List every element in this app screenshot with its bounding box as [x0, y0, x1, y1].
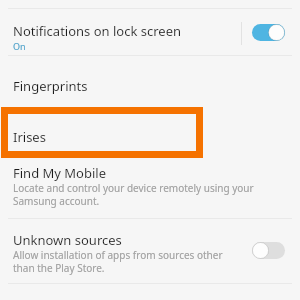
staticText: Unknown sources [13, 231, 122, 249]
staticText: than the Play Store. [13, 261, 105, 275]
staticText: Irises [13, 128, 46, 146]
button[interactable]: Unknown sources toggle [252, 242, 285, 259]
button[interactable]: Irises [0, 107, 300, 158]
staticText: Fingerprints [13, 77, 88, 95]
button[interactable]: Find My Mobile [0, 158, 300, 218]
staticText: Allow installation of apps from sources … [13, 248, 223, 262]
button[interactable]: Fingerprints [0, 56, 300, 107]
button[interactable]: Notifications on lock screen toggle [252, 24, 285, 41]
button[interactable]: Unknown sources [0, 219, 300, 283]
staticText: Find My Mobile [13, 164, 107, 182]
staticText: On [13, 40, 26, 52]
staticText: Locate and control your device remotely … [13, 181, 254, 195]
staticText: Samsung account. [13, 194, 100, 208]
staticText: Notifications on lock screen [13, 22, 182, 40]
button[interactable]: Notifications on lock screen [0, 9, 300, 55]
